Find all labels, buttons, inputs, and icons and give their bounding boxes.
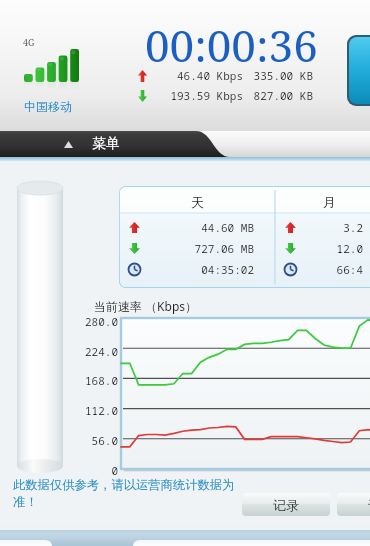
staticText: 3.2 (298, 220, 363, 235)
staticText: 56.0 (66, 433, 118, 448)
staticText: 224.0 (66, 344, 118, 359)
staticText: 记录 (273, 497, 299, 513)
staticText: 设置 (368, 497, 370, 513)
staticText: 193.59 Kbps (147, 88, 243, 103)
staticText: 827.00 KB (250, 88, 313, 103)
staticText: 44.60 MB (142, 220, 254, 235)
staticText: 46.40 Kbps (147, 68, 243, 83)
button[interactable]: 记录 (242, 493, 330, 516)
staticText: 此数据仅供参考，请以运营商统计数据为准！ (13, 477, 241, 509)
staticText: 04:35:02 (142, 262, 254, 277)
staticText: 菜单 (92, 135, 120, 153)
staticText: 4G (23, 36, 35, 48)
staticText: 当前速率 （Kbps） (94, 298, 198, 314)
staticText: 中国移动 (24, 99, 72, 114)
staticText: 天 (191, 194, 204, 210)
staticText: 66:4 (298, 262, 363, 277)
staticText: 月 (323, 194, 336, 210)
staticText: 12.0 (298, 241, 363, 256)
button[interactable]: 设置 (337, 493, 370, 516)
staticText: 727.06 MB (142, 241, 254, 256)
staticText: 335.00 KB (250, 68, 313, 83)
staticText: 0 (66, 463, 118, 478)
button[interactable] (0, 131, 370, 157)
staticText: 168.0 (66, 373, 118, 388)
button[interactable]: Start (349, 37, 370, 104)
staticText: 112.0 (66, 403, 118, 418)
staticText: 00:00:36 (145, 15, 318, 75)
staticText: 280.0 (66, 314, 118, 329)
